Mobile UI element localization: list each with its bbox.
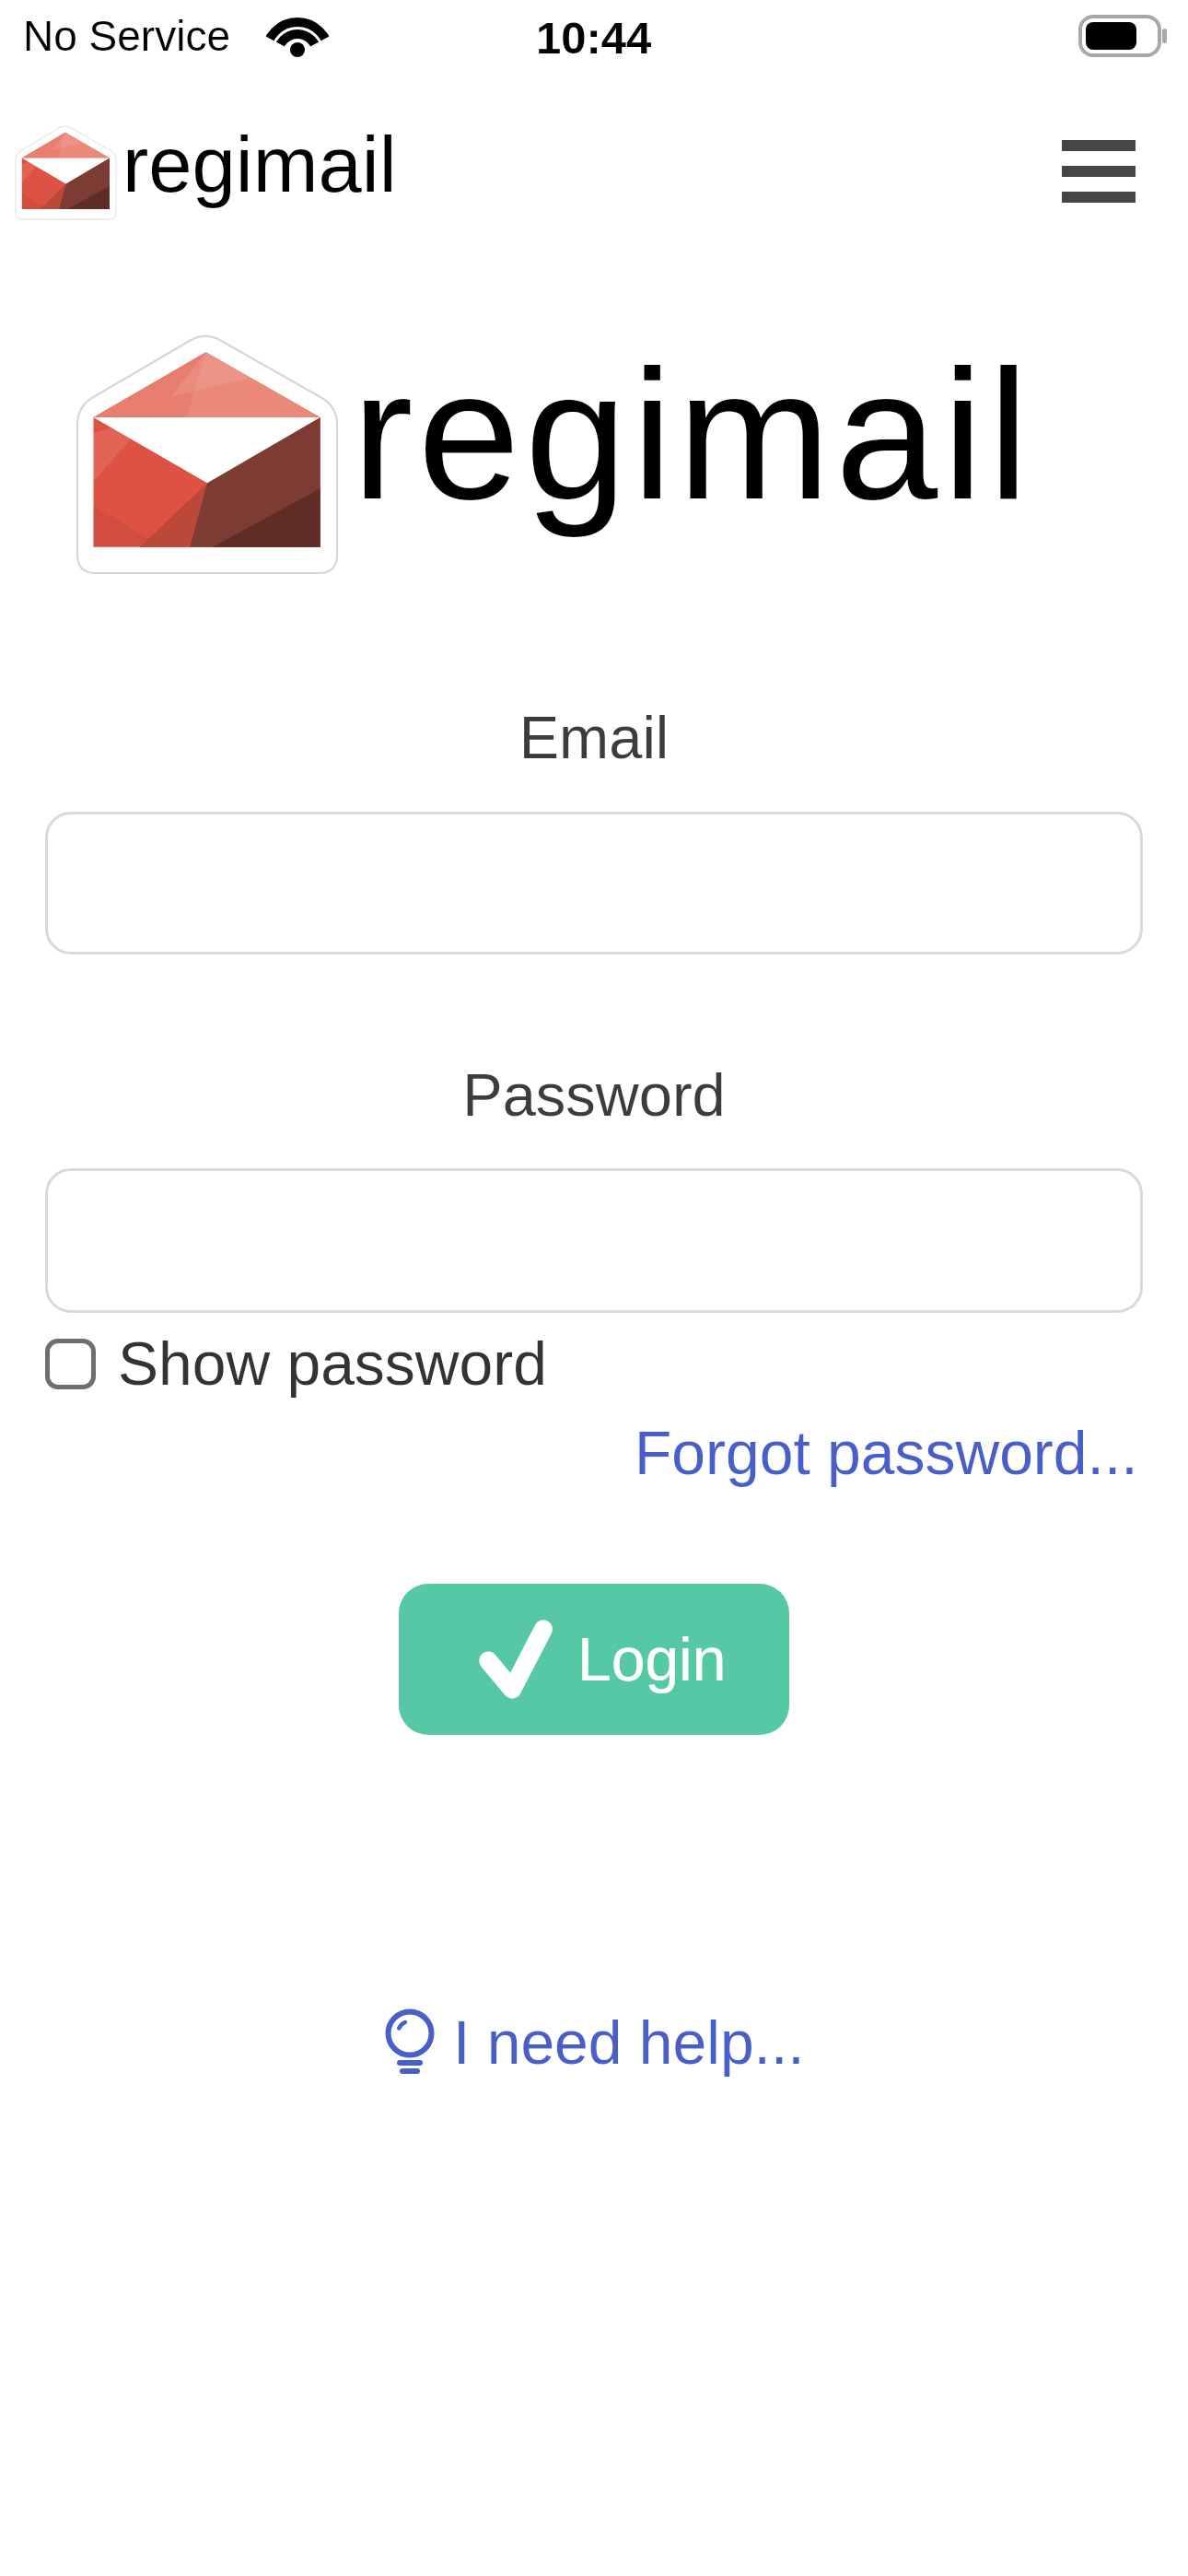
button[interactable]: Show password: [45, 1329, 547, 1398]
button[interactable]: Login: [399, 1584, 789, 1735]
button[interactable]: [45, 1168, 1143, 1313]
button[interactable]: [45, 812, 1143, 954]
staticText: regimail: [352, 332, 1034, 537]
staticText: Password: [0, 1061, 1188, 1129]
staticText: Show password: [118, 1329, 547, 1398]
staticText: No Service: [23, 12, 230, 59]
staticText: Login: [577, 1625, 727, 1693]
button[interactable]: I need help...: [0, 2008, 1188, 2077]
staticText: 10:44: [536, 13, 652, 64]
button[interactable]: [1062, 140, 1136, 203]
staticText: Email: [0, 704, 1188, 771]
staticText: I need help...: [453, 2008, 805, 2077]
button[interactable]: Forgot password...: [635, 1419, 1138, 1487]
staticText: regimail: [122, 121, 397, 208]
